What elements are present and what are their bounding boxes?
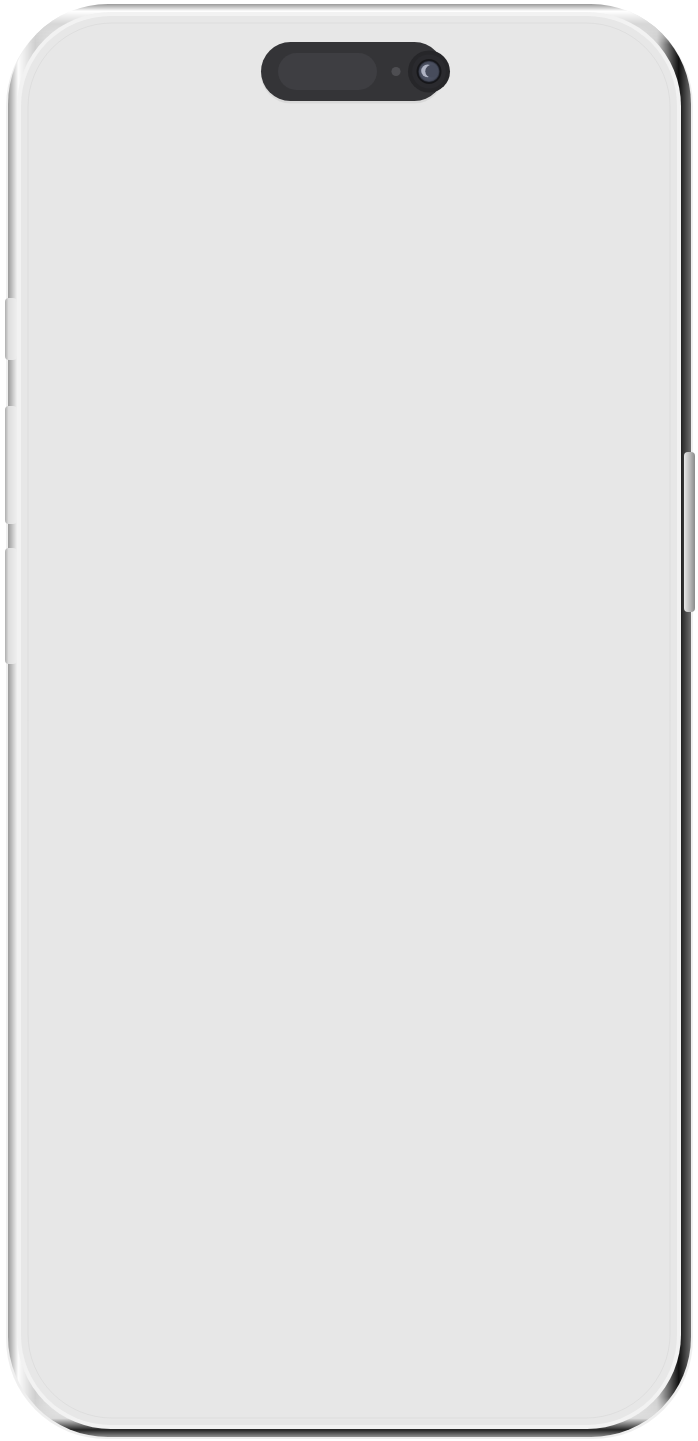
button[interactable]: Power bbox=[684, 452, 695, 612]
button[interactable]: Volume up bbox=[10, 406, 18, 524]
button[interactable]: Action button bbox=[10, 298, 18, 360]
button[interactable]: Display bbox=[21, 110, 677, 1425]
button[interactable]: Volume down bbox=[10, 548, 18, 664]
